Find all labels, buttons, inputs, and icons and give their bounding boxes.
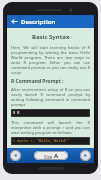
staticText: R Command Prompt : (11, 78, 64, 85)
staticText: Basic Syntax (32, 33, 70, 41)
staticText: This command will launch the R interpret… (11, 120, 90, 135)
button[interactable]: Previous (10, 150, 21, 161)
button[interactable]: Size (34, 151, 68, 160)
staticText: A (54, 152, 59, 160)
staticText: Here, We will start learning basics of R… (11, 45, 90, 75)
staticText: After environment setup of R on you can … (11, 87, 90, 107)
staticText: Size (44, 154, 54, 160)
button[interactable]: Back (7, 15, 21, 28)
button[interactable]: Next (80, 150, 91, 161)
staticText: Description (21, 18, 56, 26)
staticText: > mystr <- "Hello, World!" (13, 138, 70, 143)
staticText: $ R (13, 110, 20, 115)
